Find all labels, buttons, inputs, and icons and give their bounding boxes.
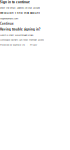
staticText: Protected by Example Inc · Privacy: [0, 43, 37, 46]
staticText: Having trouble signing in?: [0, 28, 40, 31]
staticText: Enter the email address on your account: [0, 6, 40, 9]
staticText: Workspace owners can reset member access: [0, 38, 44, 41]
staticText: We couldn't find that account: [0, 11, 40, 15]
staticText: you@example.com: [0, 17, 18, 20]
staticText: Continue: [0, 22, 14, 26]
staticText: Sign in to continue: [0, 0, 30, 4]
staticText: Watch a short walkthrough video: [0, 33, 33, 36]
